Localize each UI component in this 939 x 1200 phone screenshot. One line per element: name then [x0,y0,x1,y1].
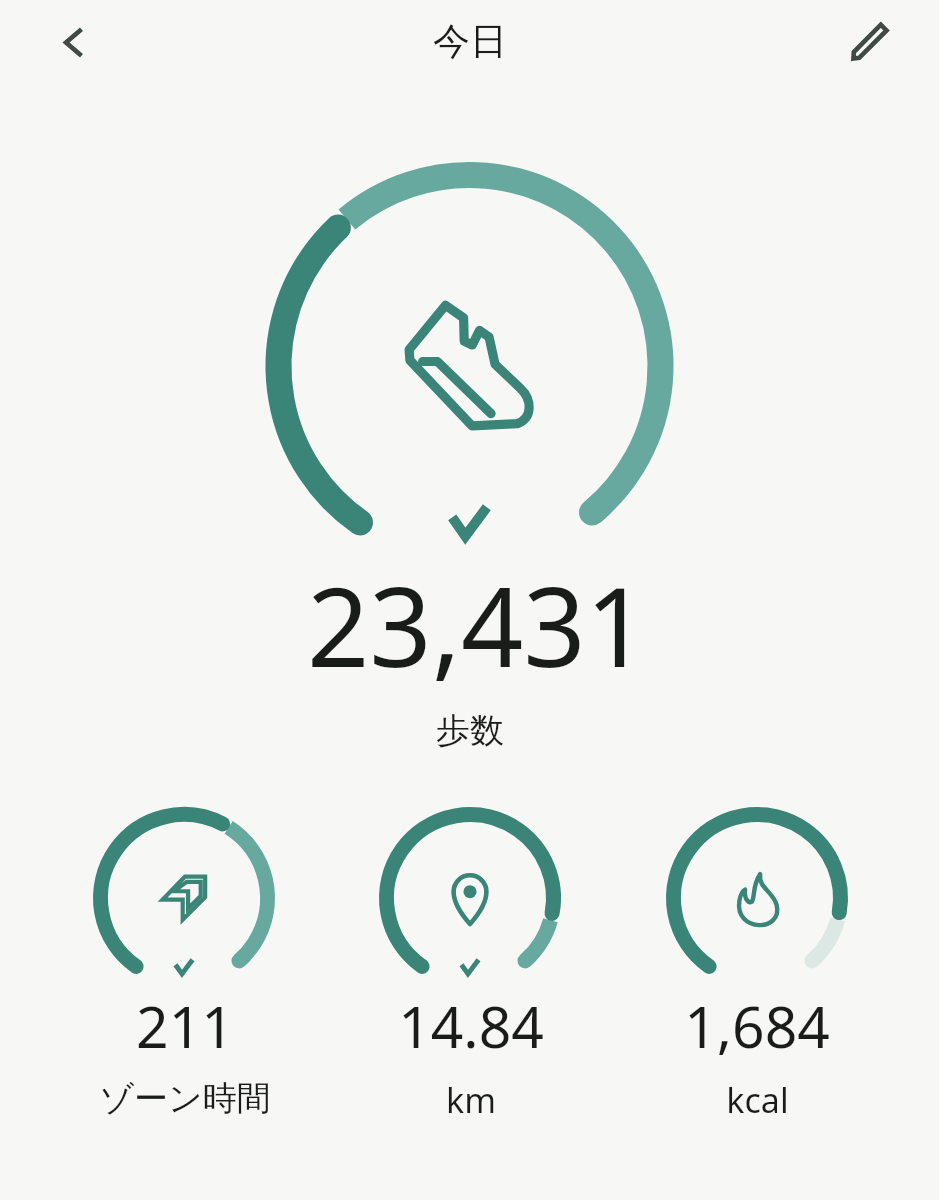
button[interactable]: Back [40,10,104,74]
button[interactable] [328,800,614,1130]
staticText: 今日 [433,18,507,65]
staticText: km [446,1077,496,1123]
staticText: ゾーン時間 [99,1077,271,1120]
staticText: kcal [726,1077,789,1123]
staticText: 23,431 [307,550,648,698]
staticText: 211 [136,987,234,1065]
button[interactable] [614,800,900,1130]
staticText: 歩数 [436,709,504,752]
button[interactable]: Edit [838,10,902,74]
staticText: 1,684 [684,987,830,1065]
button[interactable] [41,800,328,1130]
staticText: 14.84 [398,987,544,1065]
